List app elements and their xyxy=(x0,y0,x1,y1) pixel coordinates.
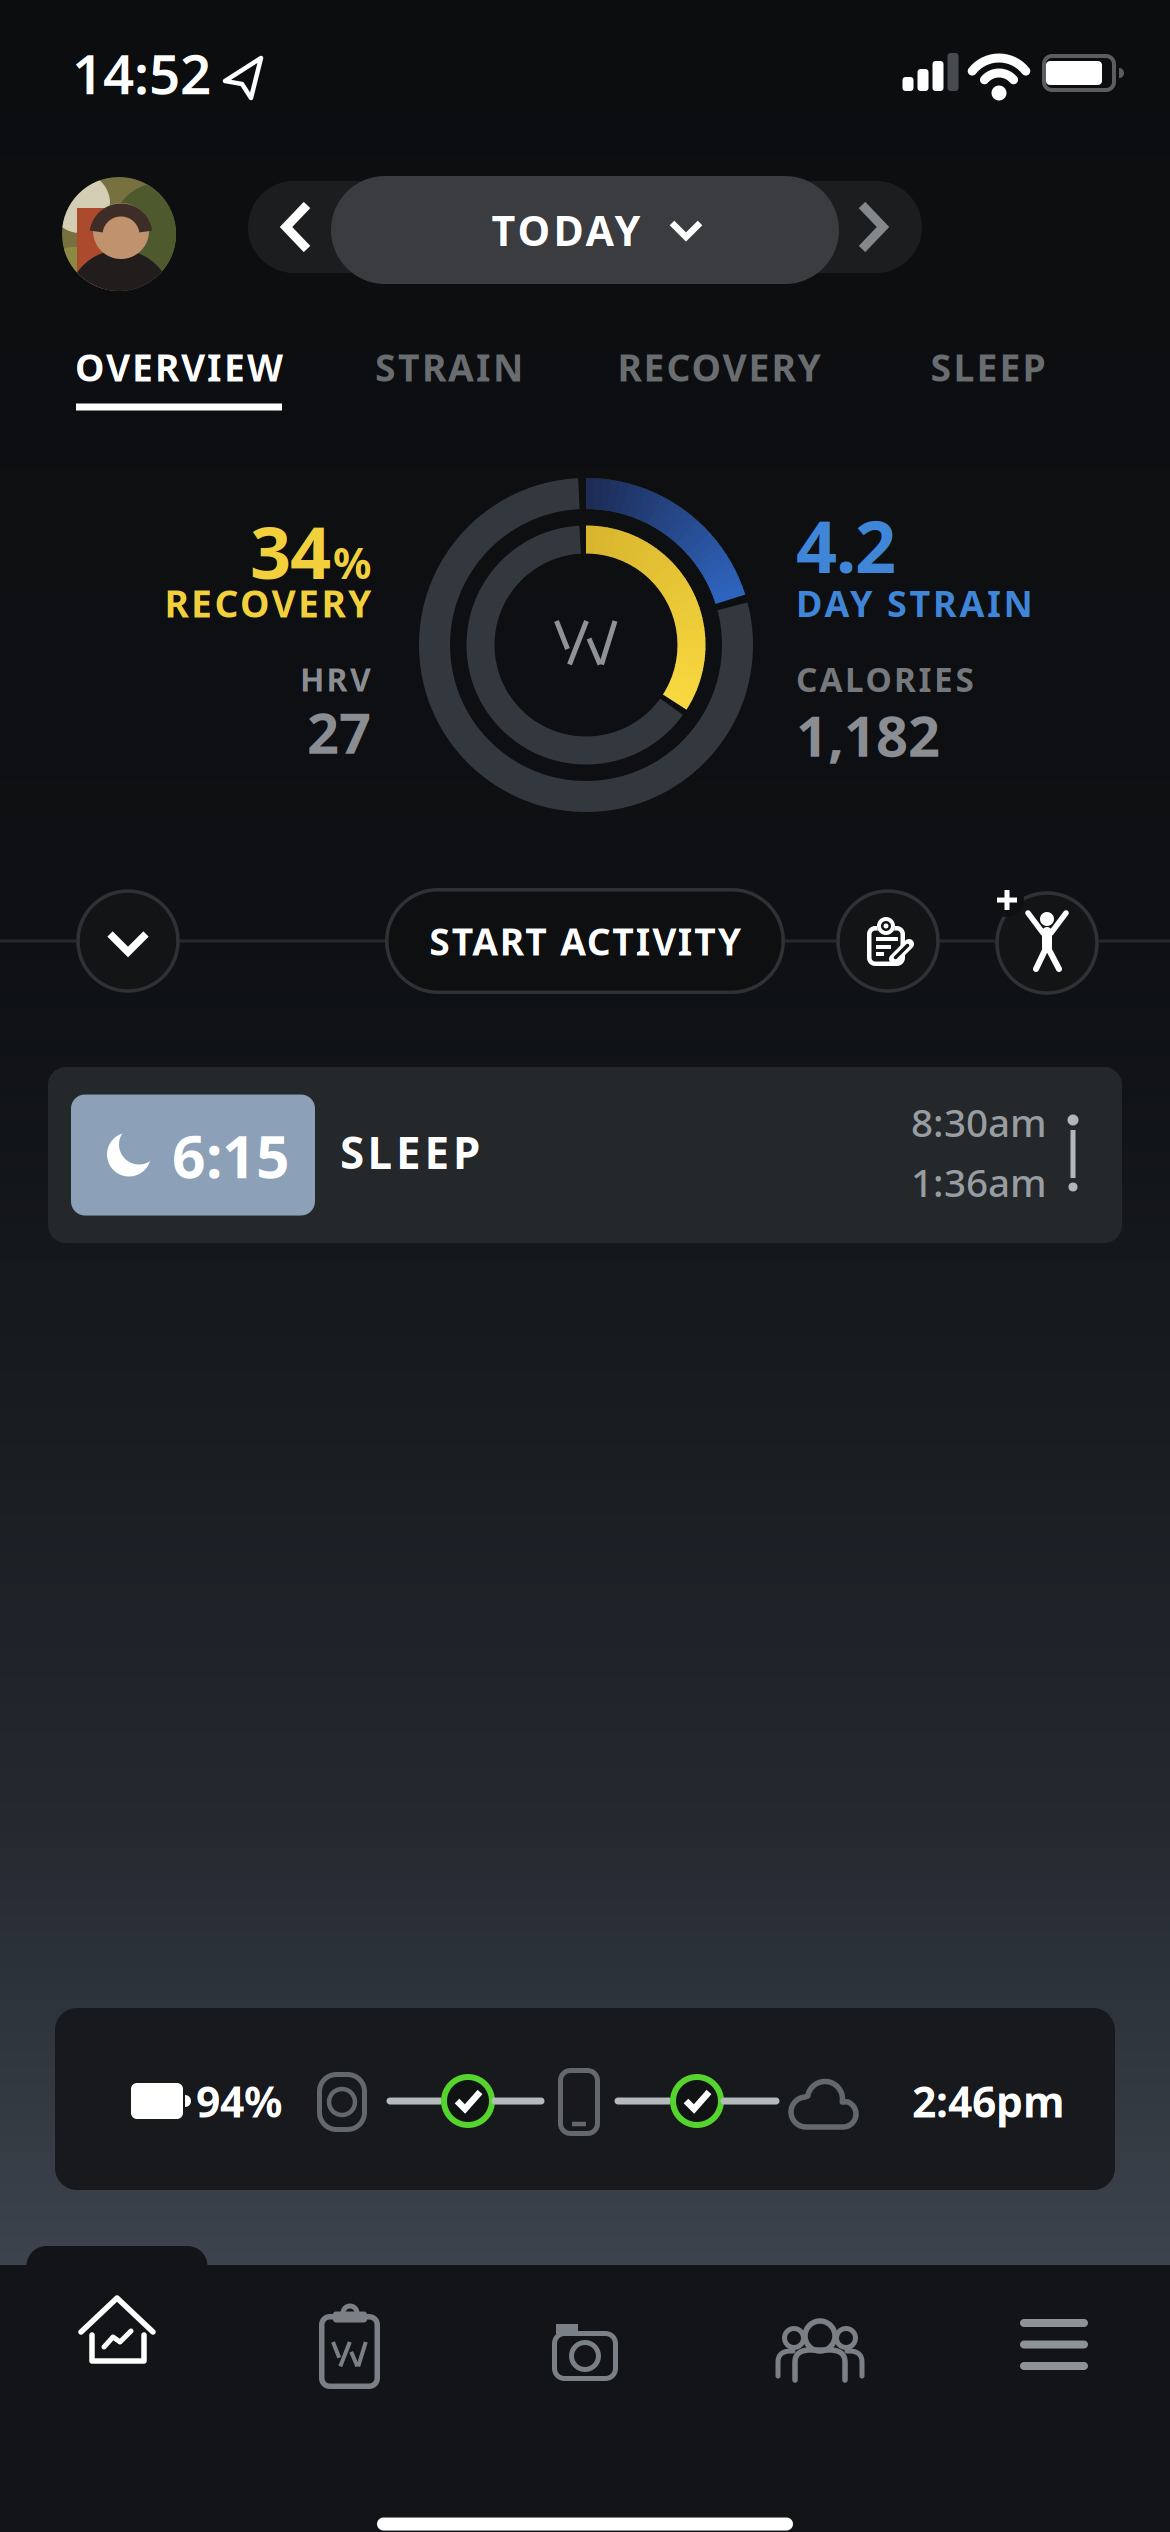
button[interactable]: Camera xyxy=(543,2305,627,2389)
staticText: DAY STRAIN xyxy=(796,579,1032,627)
button[interactable]: Home xyxy=(75,2298,159,2382)
button[interactable]: Add xyxy=(995,887,1099,999)
button[interactable]: Community xyxy=(777,2305,863,2391)
staticText: RECOVERY xyxy=(617,342,820,392)
button[interactable]: Next day xyxy=(832,181,912,273)
staticText: 8:30am xyxy=(911,1096,1047,1148)
staticText: START ACTIVITY xyxy=(429,916,741,966)
button[interactable]: Menu xyxy=(1020,2318,1086,2376)
staticText: 6:15 xyxy=(172,1116,290,1194)
staticText: 1:36am xyxy=(911,1156,1047,1208)
staticText: SLEEP xyxy=(930,342,1045,392)
staticText: TODAY xyxy=(491,203,640,257)
staticText: 34 xyxy=(250,503,331,599)
button[interactable]: STRAIN xyxy=(299,329,599,405)
staticText: % xyxy=(333,534,371,591)
button[interactable]: OVERVIEW xyxy=(29,329,329,405)
button[interactable]: Activities xyxy=(306,2307,394,2395)
button[interactable]: Collapse xyxy=(76,889,180,993)
button[interactable]: SLEEP xyxy=(838,329,1138,405)
staticText: 1,182 xyxy=(796,698,940,772)
button[interactable]: Log activity xyxy=(836,889,940,993)
staticText: SLEEP xyxy=(340,1123,480,1181)
staticText: RECOVERY xyxy=(164,578,371,628)
staticText: 27 xyxy=(307,695,371,769)
button[interactable]: Profile xyxy=(62,177,176,291)
staticText: 94% xyxy=(196,2073,282,2129)
button[interactable]: RECOVERY xyxy=(569,329,869,405)
staticText: 2:46pm xyxy=(912,2073,1065,2129)
staticText: OVERVIEW xyxy=(75,342,283,392)
button[interactable]: Select date xyxy=(331,176,839,284)
staticText: HRV xyxy=(300,658,371,700)
button[interactable]: START ACTIVITY xyxy=(385,888,785,994)
button[interactable]: Previous day xyxy=(257,181,337,273)
staticText: STRAIN xyxy=(375,342,523,392)
staticText: 14:52 xyxy=(72,37,211,109)
staticText: CALORIES xyxy=(796,657,973,701)
button[interactable]: 6:15 xyxy=(48,1067,1122,1243)
staticText: 4.2 xyxy=(796,497,896,593)
